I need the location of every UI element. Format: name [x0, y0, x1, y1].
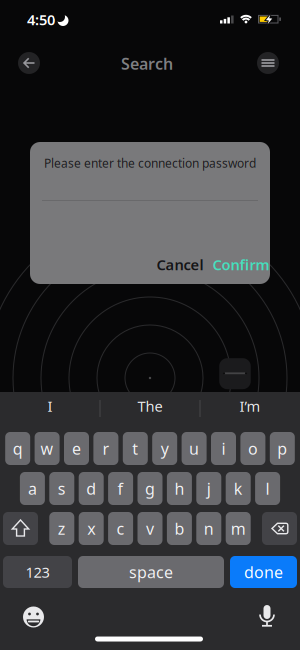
staticText: I’m	[239, 396, 260, 416]
staticText: done	[244, 561, 283, 583]
button[interactable]: g	[137, 472, 162, 505]
staticText: k	[234, 478, 243, 499]
button[interactable]: h	[167, 472, 192, 505]
button[interactable]: v	[137, 512, 162, 545]
button[interactable]: q	[5, 432, 30, 465]
button[interactable]: Delete	[262, 512, 297, 545]
staticText: h	[174, 478, 184, 499]
staticText: I	[47, 396, 52, 416]
button[interactable]: z	[49, 512, 74, 545]
button[interactable]: Emoji	[21, 605, 45, 629]
button[interactable]: The	[105, 393, 195, 419]
staticText: c	[117, 518, 125, 539]
button[interactable]: Back	[7, 41, 51, 85]
staticText: d	[86, 478, 96, 499]
staticText: Search	[121, 53, 173, 74]
button[interactable]: i	[211, 432, 236, 465]
button[interactable]: e	[64, 432, 89, 465]
button[interactable]: n	[196, 512, 221, 545]
staticText: n	[204, 518, 214, 539]
staticText: o	[248, 438, 258, 459]
staticText: z	[58, 518, 66, 539]
staticText: f	[118, 478, 124, 499]
staticText: 123	[25, 562, 49, 582]
button[interactable]: r	[93, 432, 118, 465]
staticText: s	[58, 478, 66, 499]
staticText: 4:50	[27, 10, 55, 29]
staticText: e	[72, 438, 81, 459]
button[interactable]: b	[167, 512, 192, 545]
button[interactable]: m	[226, 512, 251, 545]
staticText: x	[87, 518, 95, 539]
staticText: j	[207, 478, 211, 499]
button[interactable]: Shift	[3, 512, 38, 545]
staticText: w	[41, 438, 54, 459]
button[interactable]: Menu	[246, 41, 290, 85]
staticText: The	[137, 396, 162, 416]
button[interactable]: s	[49, 472, 74, 505]
staticText: m	[231, 518, 246, 539]
button[interactable]: f	[108, 472, 133, 505]
button[interactable]: k	[226, 472, 251, 505]
staticText: v	[146, 518, 154, 539]
staticText: p	[277, 438, 287, 459]
button[interactable]: l	[255, 472, 280, 505]
button[interactable]: Cancel	[150, 249, 210, 279]
staticText: t	[132, 438, 138, 459]
button[interactable]: Confirm	[209, 249, 273, 279]
staticText: r	[102, 438, 109, 459]
staticText: Cancel	[156, 255, 203, 274]
button[interactable]: Dictation	[253, 601, 281, 629]
staticText: l	[266, 478, 270, 499]
staticText: i	[221, 438, 225, 459]
staticText: space	[129, 561, 173, 583]
button[interactable]: I	[5, 393, 95, 419]
button[interactable]: u	[182, 432, 207, 465]
staticText: q	[13, 438, 23, 459]
staticText: a	[28, 478, 37, 499]
staticText: y	[161, 438, 169, 459]
button[interactable]: Hide Keyboard	[219, 358, 251, 389]
staticText: Confirm	[212, 255, 269, 274]
staticText: Please enter the connection password	[44, 155, 256, 171]
button[interactable]: p	[270, 432, 295, 465]
button[interactable]: y	[152, 432, 177, 465]
button[interactable]: a	[20, 472, 45, 505]
button[interactable]: 123	[3, 556, 72, 588]
staticText: b	[174, 518, 184, 539]
staticText: u	[189, 438, 199, 459]
button[interactable]: I’m	[205, 393, 295, 419]
staticText: g	[145, 478, 155, 499]
button[interactable]: space	[78, 556, 224, 588]
button[interactable]: x	[79, 512, 104, 545]
button[interactable]: t	[123, 432, 148, 465]
button[interactable]: j	[196, 472, 221, 505]
button[interactable]: o	[240, 432, 265, 465]
button[interactable]: w	[35, 432, 60, 465]
button[interactable]: c	[108, 512, 133, 545]
button[interactable]: done	[230, 556, 297, 588]
button[interactable]: d	[79, 472, 104, 505]
